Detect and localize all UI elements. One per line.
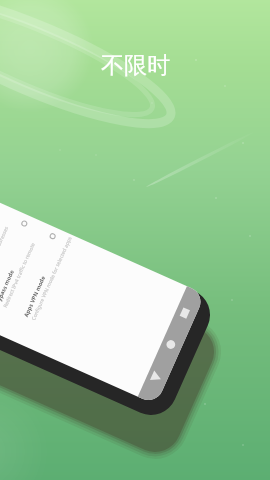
staticText: 不限时 <box>101 51 170 80</box>
